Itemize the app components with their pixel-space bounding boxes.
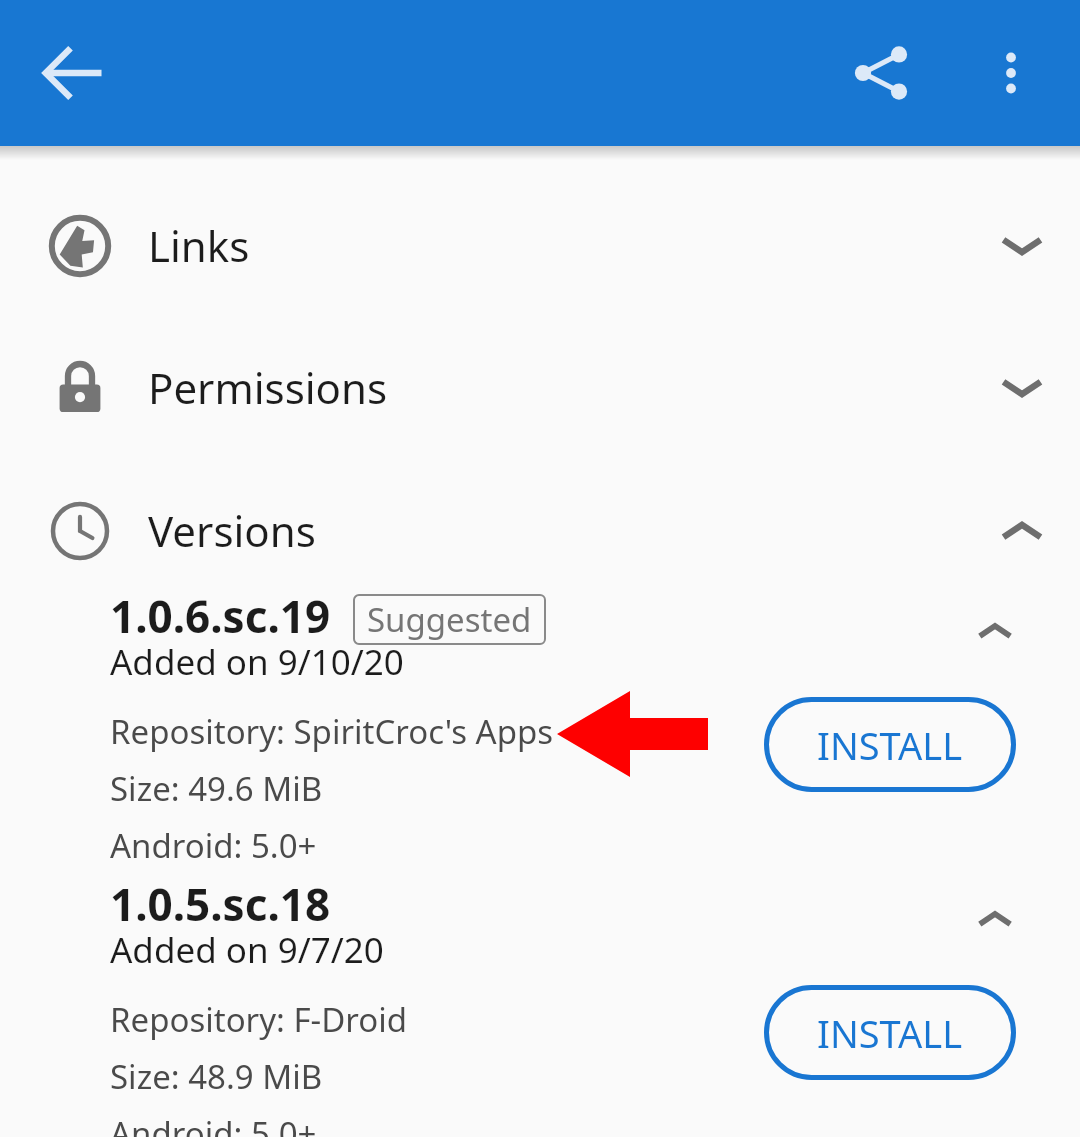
staticText: Repository: SpiritCroc's Apps bbox=[110, 709, 554, 754]
staticText: Size: 49.6 MiB bbox=[110, 766, 323, 811]
button[interactable]: Links bbox=[0, 189, 1080, 302]
staticText: Versions bbox=[148, 502, 316, 559]
staticText: INSTALL bbox=[817, 719, 963, 771]
button[interactable]: Collapse version details bbox=[958, 882, 1032, 956]
button[interactable]: INSTALL bbox=[764, 697, 1016, 792]
staticText: INSTALL bbox=[817, 1007, 963, 1059]
button[interactable]: Back bbox=[20, 20, 126, 126]
button[interactable]: 1.0.6.sc.19 bbox=[0, 586, 1080, 874]
staticText: Size: 48.9 MiB bbox=[110, 1054, 323, 1099]
button[interactable]: INSTALL bbox=[764, 985, 1016, 1080]
staticText: Added on 9/10/20 bbox=[110, 638, 404, 686]
staticText: Suggested bbox=[367, 597, 532, 642]
button[interactable]: More options bbox=[958, 20, 1064, 126]
staticText: 1.0.5.sc.18 bbox=[110, 874, 331, 934]
staticText: Repository: F-Droid bbox=[110, 997, 408, 1042]
staticText: Added on 9/7/20 bbox=[110, 926, 384, 974]
button[interactable]: Versions bbox=[0, 474, 1080, 587]
button[interactable]: Share bbox=[828, 20, 934, 126]
staticText: Android: 5.0+ bbox=[110, 1111, 317, 1137]
staticText: Android: 5.0+ bbox=[110, 823, 317, 868]
staticText: Links bbox=[148, 217, 250, 274]
button[interactable]: Collapse version details bbox=[958, 594, 1032, 668]
staticText: Permissions bbox=[148, 359, 388, 416]
button[interactable]: Permissions bbox=[0, 331, 1080, 444]
staticText: 1.0.6.sc.19 bbox=[110, 586, 331, 646]
button[interactable]: 1.0.5.sc.18 bbox=[0, 874, 1080, 1137]
